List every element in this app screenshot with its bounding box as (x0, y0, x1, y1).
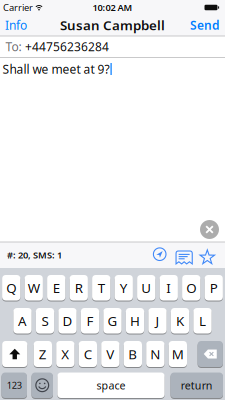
staticText: 10:02 AM (92, 1, 132, 14)
button[interactable]: Delete (198, 340, 223, 367)
button[interactable]: Templates (175, 250, 193, 265)
staticText: V (106, 345, 114, 363)
button[interactable]: C (79, 340, 97, 367)
staticText: Info (5, 17, 27, 33)
button[interactable]: Q (2, 274, 20, 301)
button[interactable]: Y (115, 274, 133, 301)
button[interactable]: P (205, 274, 223, 301)
staticText: To: (5, 38, 21, 54)
staticText: Y (120, 279, 128, 297)
button[interactable]: D (58, 307, 77, 334)
staticText: A (18, 312, 27, 330)
staticText: Z (39, 345, 47, 363)
button[interactable]: N (146, 340, 164, 367)
staticText: B (128, 345, 137, 363)
button[interactable]: Favorites (200, 249, 215, 265)
button[interactable]: Shift (2, 340, 27, 367)
staticText: return (181, 378, 213, 392)
staticText: U (141, 279, 151, 297)
button[interactable]: O (182, 274, 200, 301)
button[interactable]: space (57, 372, 165, 398)
staticText: #: 20, SMS: 1 (7, 249, 62, 261)
button[interactable]: return (170, 372, 223, 398)
button[interactable]: A (13, 307, 32, 334)
button[interactable]: T (92, 274, 110, 301)
staticText: J (155, 312, 159, 330)
button[interactable]: Close (200, 220, 219, 239)
staticText: T (98, 279, 105, 297)
button[interactable]: F (81, 307, 99, 334)
button[interactable]: X (56, 340, 74, 367)
button[interactable]: G (103, 307, 122, 334)
button[interactable]: K (171, 307, 189, 334)
staticText: G (107, 312, 117, 330)
button[interactable]: W (25, 274, 43, 301)
staticText: X (61, 345, 69, 363)
button[interactable]: H (126, 307, 144, 334)
staticText: L (199, 312, 206, 330)
button[interactable]: 123 (1, 372, 27, 398)
button[interactable]: I (160, 274, 178, 301)
staticText: M (172, 345, 184, 363)
staticText: Shall we meet at 9? (2, 61, 109, 77)
staticText: K (176, 312, 184, 330)
button[interactable]: Send current location (153, 247, 166, 261)
staticText: 123 (7, 379, 22, 391)
button[interactable]: Send (190, 17, 220, 33)
staticText: P (210, 279, 218, 297)
staticText: O (186, 279, 196, 297)
staticText: R (75, 279, 83, 297)
button[interactable]: Emoji (31, 372, 53, 398)
staticText: N (150, 345, 160, 363)
staticText: Carrier (3, 1, 33, 14)
staticText: S (41, 312, 48, 330)
button[interactable]: S (36, 307, 54, 334)
staticText: C (84, 345, 92, 363)
staticText: Susan Campbell (60, 16, 165, 34)
button[interactable]: E (47, 274, 65, 301)
button[interactable]: V (101, 340, 119, 367)
staticText: F (86, 312, 93, 330)
staticText: W (28, 279, 40, 297)
staticText: I (166, 279, 171, 297)
staticText: Send (190, 17, 220, 33)
button[interactable]: Z (34, 340, 52, 367)
button[interactable]: B (124, 340, 142, 367)
staticText: +44756236284 (25, 38, 109, 54)
button[interactable]: R (70, 274, 88, 301)
staticText: space (96, 378, 125, 392)
staticText: D (62, 312, 72, 330)
button[interactable]: M (169, 340, 187, 367)
staticText: Q (6, 279, 16, 297)
button[interactable]: L (193, 307, 212, 334)
staticText: H (130, 312, 140, 330)
button[interactable]: Info (5, 17, 27, 33)
button[interactable]: U (137, 274, 155, 301)
staticText: E (53, 279, 60, 297)
button[interactable]: J (148, 307, 167, 334)
